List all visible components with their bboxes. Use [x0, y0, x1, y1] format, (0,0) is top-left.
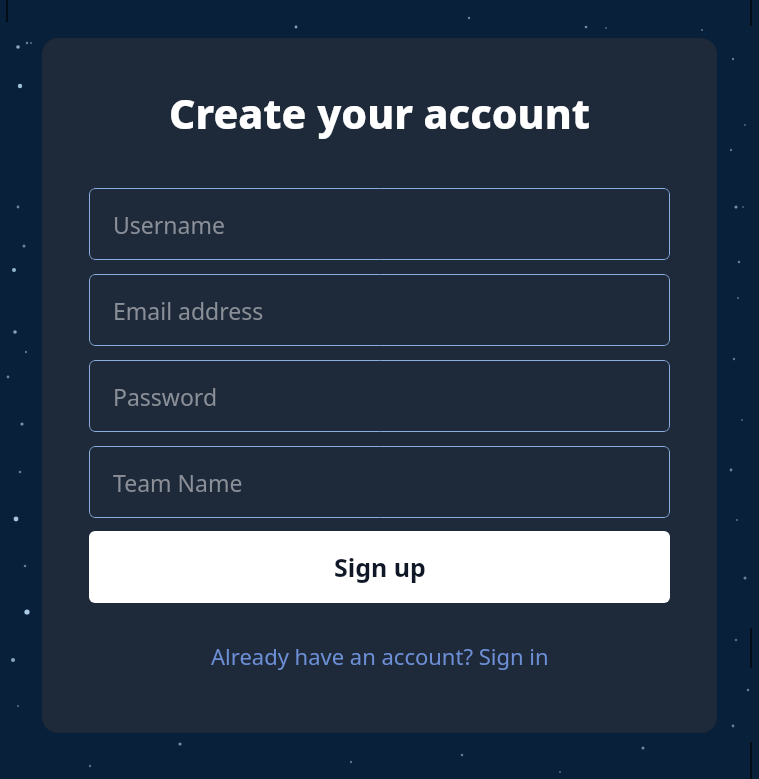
button[interactable]: Team Name [89, 446, 670, 518]
staticText: Already have an account? Sign in [211, 641, 549, 671]
button[interactable]: Password [89, 360, 670, 432]
button[interactable]: Already have an account? Sign in [205, 637, 555, 675]
staticText: Sign up [334, 550, 426, 584]
button[interactable]: Username [89, 188, 670, 260]
staticText: Team Name [113, 467, 243, 498]
staticText: Create your account [169, 85, 590, 141]
staticText: Password [113, 381, 218, 412]
button[interactable]: Email address [89, 274, 670, 346]
button[interactable]: Sign up [89, 531, 670, 603]
staticText: Username [113, 209, 225, 240]
staticText: Email address [113, 295, 264, 326]
